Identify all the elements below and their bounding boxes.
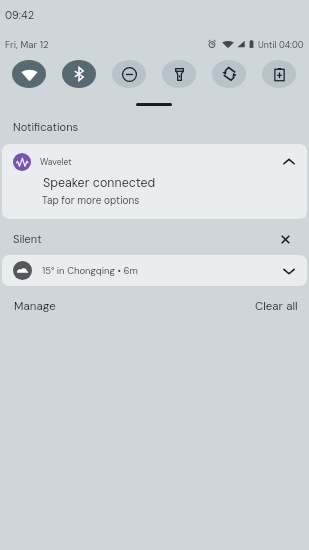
button[interactable]: Wi-Fi (12, 60, 46, 88)
staticText: Notifications (13, 120, 79, 134)
button[interactable]: Manage (8, 294, 62, 319)
staticText: Silent (13, 232, 42, 246)
staticText: 15° in Chongqing • 6m (42, 265, 138, 277)
button[interactable]: 15° in Chongqing • 6m (2, 255, 307, 286)
button[interactable]: Bluetooth (62, 60, 96, 88)
staticText: Until 04:00 (258, 39, 304, 50)
staticText: Fri, Mar 12 (5, 39, 49, 51)
button[interactable]: Clear all (249, 294, 304, 319)
button[interactable]: Do not disturb (112, 60, 146, 88)
button[interactable]: Collapse notification (277, 149, 301, 173)
button[interactable]: Wavelet (2, 144, 307, 219)
button[interactable]: Expand notification (277, 259, 301, 283)
button[interactable]: Flashlight (162, 60, 196, 88)
button[interactable]: Auto-rotate (212, 60, 246, 88)
staticText: Clear all (255, 299, 298, 314)
staticText: Manage (14, 299, 56, 314)
staticText: 09:42 (5, 8, 35, 22)
staticText: Tap for more options (42, 194, 140, 207)
button[interactable]: Clear silent notifications (273, 227, 297, 251)
staticText: Speaker connected (43, 175, 156, 191)
staticText: Wavelet (40, 157, 72, 168)
button[interactable]: Battery saver (262, 60, 296, 88)
